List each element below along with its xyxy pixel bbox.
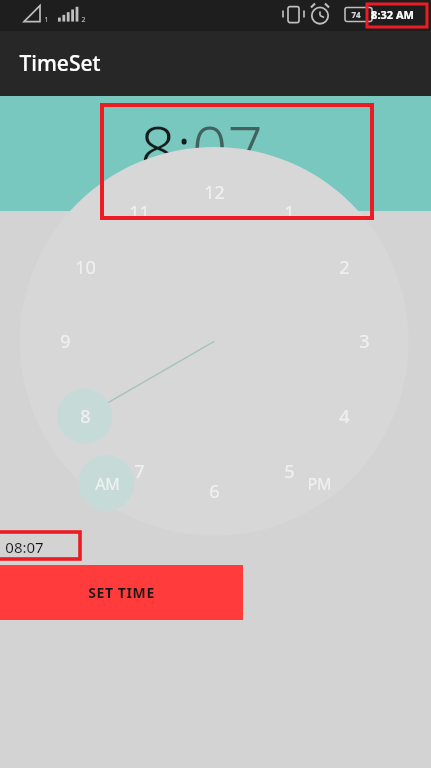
staticText: PM (307, 473, 332, 495)
staticText: 2 (81, 15, 86, 25)
staticText: TimeSet (19, 49, 101, 78)
staticText: : (176, 106, 192, 190)
staticText: AM (95, 473, 120, 495)
button[interactable]: 7 (120, 457, 158, 485)
button[interactable]: TimeSet (0, 31, 431, 96)
button[interactable]: 9 (46, 327, 84, 355)
button[interactable]: 10 (66, 253, 104, 281)
staticText: 8 (140, 106, 176, 190)
button[interactable]: 11 (120, 198, 158, 226)
staticText: 12 (204, 180, 225, 205)
staticText: 9 (60, 329, 71, 354)
staticText: 74 (351, 9, 361, 20)
button[interactable]: 12 (195, 178, 233, 206)
staticText: 10 (75, 255, 96, 280)
button[interactable]: AM (269, 158, 292, 177)
staticText: 1 (284, 200, 295, 225)
button[interactable]: 2 (325, 253, 363, 281)
staticText: 7 (134, 459, 145, 484)
button[interactable]: SET TIME (0, 565, 243, 620)
button[interactable]: 6 (195, 477, 233, 505)
staticText: 8:32 AM (371, 7, 414, 22)
staticText: 5 (284, 459, 295, 484)
staticText: 1 (44, 15, 49, 25)
button[interactable]: PM (298, 463, 340, 505)
button[interactable]: AM (86, 463, 128, 505)
button[interactable]: 8 (140, 106, 176, 190)
staticText: SET TIME (88, 583, 155, 602)
staticText: 8 (80, 404, 91, 429)
button[interactable]: 1 (270, 198, 308, 226)
staticText: 11 (129, 200, 150, 225)
button[interactable]: 07 (192, 106, 263, 190)
staticText: 6 (209, 479, 220, 504)
staticText: 3 (359, 329, 370, 354)
staticText: 07 (192, 106, 263, 190)
staticText: 2 (339, 255, 350, 280)
button[interactable]: 8 (66, 402, 104, 430)
button[interactable]: 3 (345, 327, 383, 355)
button[interactable]: 5 (270, 457, 308, 485)
staticText: AM (269, 158, 292, 177)
button[interactable]: 4 (325, 402, 363, 430)
staticText: 4 (339, 404, 350, 429)
staticText: 08:07 (5, 537, 44, 557)
